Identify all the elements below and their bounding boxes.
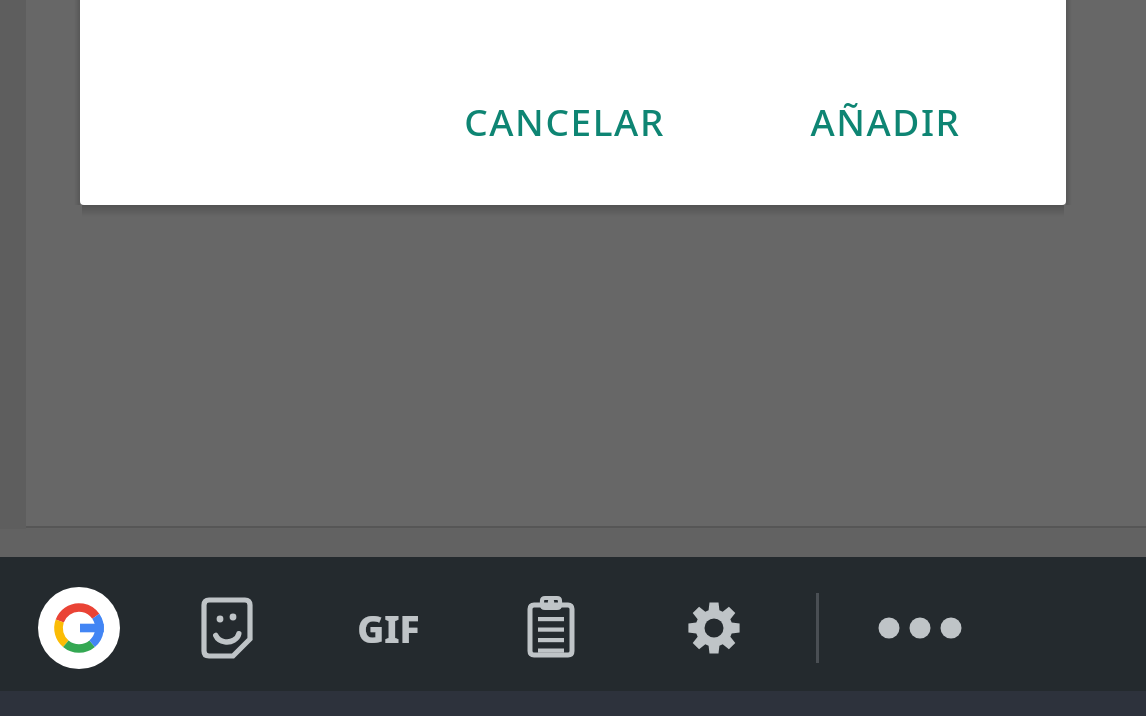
button[interactable]: AÑADIR — [785, 88, 985, 154]
staticText: CANCELAR — [464, 96, 665, 146]
button[interactable]: Settings — [666, 580, 762, 676]
staticText: GIF — [357, 603, 420, 653]
button[interactable]: GIF — [332, 576, 444, 680]
button[interactable]: More options — [872, 580, 968, 676]
button[interactable]: Stickers — [179, 580, 275, 676]
button[interactable]: CANCELAR — [432, 88, 697, 154]
staticText: AÑADIR — [810, 96, 961, 146]
button[interactable]: Clipboard — [503, 580, 599, 676]
button[interactable]: Google search — [31, 580, 127, 676]
